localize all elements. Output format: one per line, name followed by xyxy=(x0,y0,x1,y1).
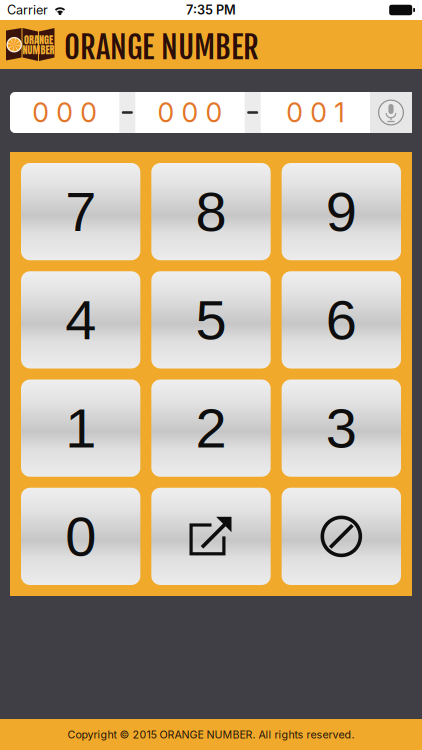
button[interactable]: 2 xyxy=(151,379,271,477)
button[interactable] xyxy=(151,488,271,585)
staticText: 4 xyxy=(65,289,96,351)
button[interactable]: 3 xyxy=(282,379,401,477)
button[interactable]: 1 xyxy=(21,379,140,477)
button[interactable]: Dictate number xyxy=(370,92,412,133)
staticText: 5 xyxy=(195,289,226,351)
staticText: 9 xyxy=(326,180,357,243)
staticText: 8 xyxy=(195,180,226,243)
button[interactable]: 6 xyxy=(282,271,401,368)
staticText: 7:35 PM xyxy=(186,2,236,18)
button[interactable] xyxy=(282,488,401,585)
staticText: 7 xyxy=(65,180,96,243)
button[interactable]: 5 xyxy=(151,271,271,368)
staticText: 0 0 0 xyxy=(32,96,97,129)
staticText: ORANGE xyxy=(24,32,53,48)
staticText: Copyright © 2015 ORANGE NUMBER. All righ… xyxy=(67,728,354,741)
staticText: 3 xyxy=(326,397,357,459)
button[interactable]: 8 xyxy=(151,163,271,260)
button[interactable]: 9 xyxy=(282,163,401,260)
staticText: 2 xyxy=(195,397,226,459)
staticText: 0 xyxy=(65,505,96,568)
button[interactable]: 7 xyxy=(21,163,140,260)
staticText: Carrier xyxy=(7,2,48,18)
staticText: 6 xyxy=(326,289,357,351)
button[interactable]: 0 xyxy=(21,488,140,585)
staticText: 0 0 0 xyxy=(157,96,222,129)
button[interactable]: 4 xyxy=(21,271,140,368)
staticText: 1 xyxy=(65,397,96,459)
staticText: 0 0 1 xyxy=(286,96,344,129)
staticText: ORANGE NUMBER xyxy=(64,28,259,67)
staticText: NUMBER xyxy=(22,42,54,58)
